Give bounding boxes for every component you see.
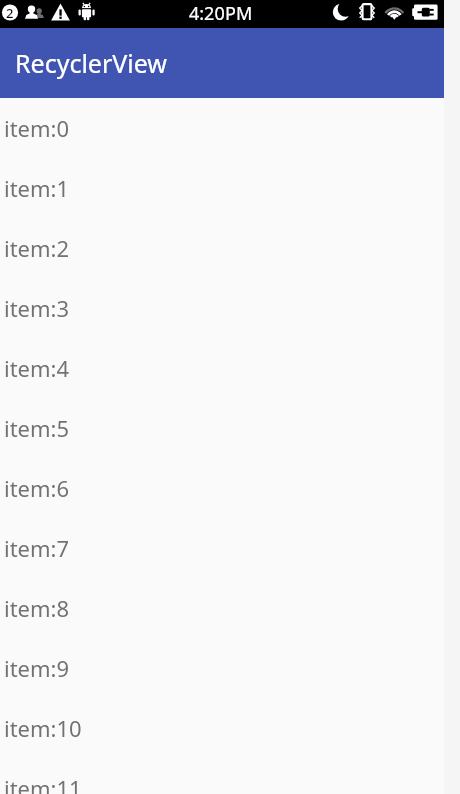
staticText: RecyclerView [15, 46, 167, 80]
button[interactable]: item:7 [0, 518, 444, 578]
button[interactable]: item:0 [0, 98, 444, 158]
staticText: 4:20 [189, 1, 225, 26]
staticText: item:10 [4, 713, 82, 743]
button[interactable]: item:10 [0, 698, 444, 758]
staticText: PM [225, 1, 253, 26]
staticText: item:3 [4, 293, 70, 323]
button[interactable]: item:5 [0, 398, 444, 458]
staticText: item:4 [4, 353, 70, 383]
button[interactable]: item:9 [0, 638, 444, 698]
staticText: item:9 [4, 653, 70, 683]
button[interactable]: item:1 [0, 158, 444, 218]
staticText: item:1 [4, 173, 70, 203]
staticText: 2 [6, 4, 14, 22]
staticText: item:7 [4, 533, 70, 563]
staticText: item:8 [4, 593, 70, 623]
button[interactable]: item:11 [0, 758, 444, 794]
button[interactable]: item:6 [0, 458, 444, 518]
button[interactable]: item:2 [0, 218, 444, 278]
button[interactable]: item:4 [0, 338, 444, 398]
staticText: item:0 [4, 113, 70, 143]
staticText: item:5 [4, 413, 70, 443]
staticText: item:6 [4, 473, 70, 503]
button[interactable]: item:8 [0, 578, 444, 638]
staticText: item:2 [4, 233, 70, 263]
other: RecyclerView app bar [0, 28, 444, 98]
staticText: item:11 [4, 773, 82, 794]
button[interactable]: item:3 [0, 278, 444, 338]
